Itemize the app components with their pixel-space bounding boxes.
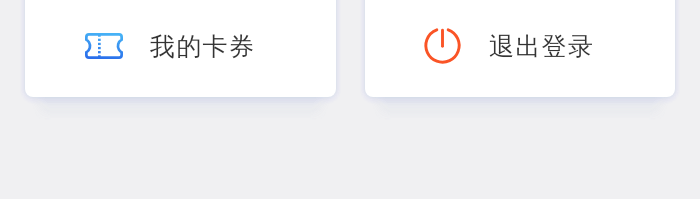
- staticText: 我的卡券: [150, 31, 256, 62]
- other: My coupons: [85, 33, 123, 59]
- button[interactable]: [365, 0, 675, 97]
- other: Log out: [424, 27, 461, 64]
- staticText: 退出登录: [489, 31, 595, 62]
- button[interactable]: [25, 0, 336, 97]
